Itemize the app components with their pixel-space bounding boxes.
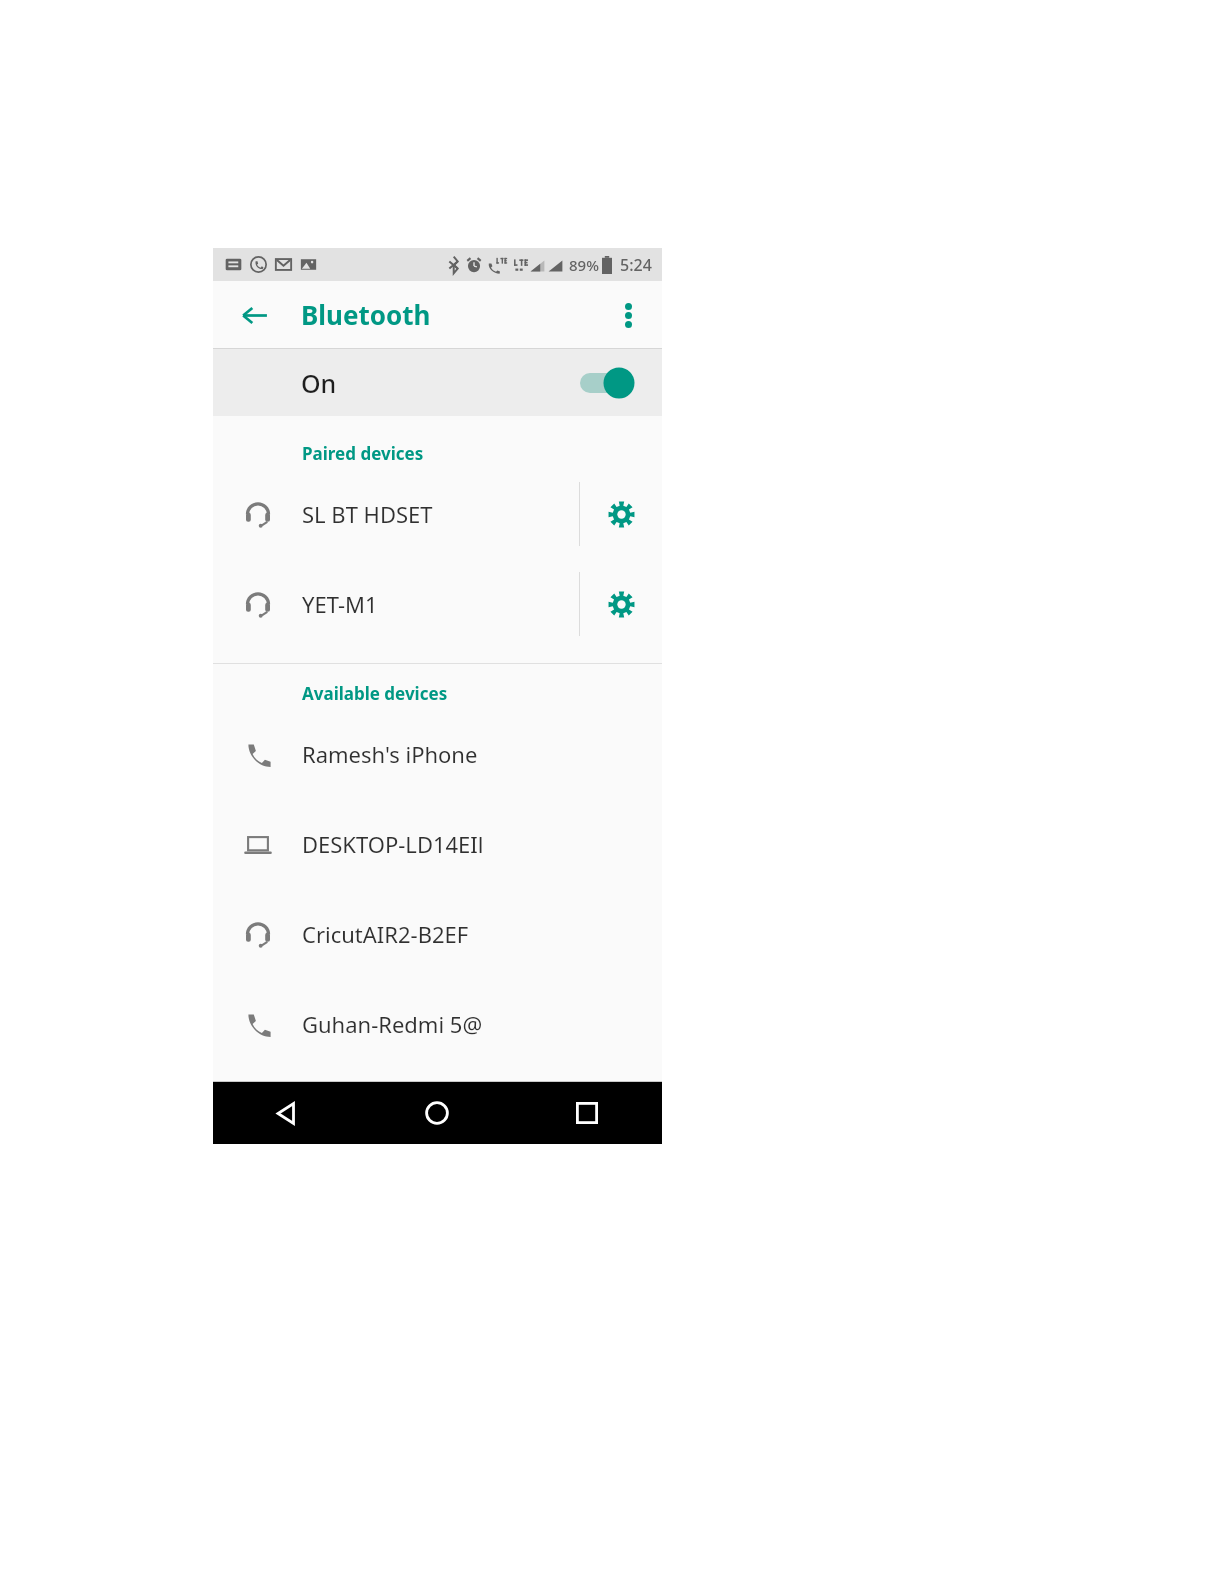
staticText: Guhan-Redmi 5@ bbox=[302, 1009, 642, 1039]
staticText: 89% bbox=[569, 255, 599, 275]
staticText: YET-M1 bbox=[302, 589, 579, 619]
button[interactable]: Guhan-Redmi 5@ bbox=[213, 979, 662, 1069]
button[interactable]: Home bbox=[362, 1082, 512, 1144]
staticText: CricutAIR2-B2EF bbox=[302, 919, 642, 949]
button[interactable]: CricutAIR2-B2EF bbox=[213, 889, 662, 979]
button[interactable]: Recent apps bbox=[512, 1082, 662, 1144]
button[interactable]: More options bbox=[606, 293, 650, 337]
staticText: SL BT HDSET bbox=[302, 499, 579, 529]
staticText: Ramesh's iPhone bbox=[302, 739, 642, 769]
button[interactable]: DESKTOP-LD14EIl bbox=[213, 799, 662, 889]
button[interactable]: Navigate up bbox=[231, 292, 277, 338]
staticText: Bluetooth bbox=[301, 297, 431, 332]
staticText: Paired devices bbox=[302, 442, 424, 465]
button[interactable]: Back bbox=[213, 1082, 362, 1144]
button[interactable]: Device settings bbox=[580, 469, 662, 559]
staticText: On bbox=[301, 366, 337, 400]
button[interactable]: Device settings bbox=[580, 559, 662, 649]
button[interactable]: YET-M1 bbox=[213, 559, 662, 649]
button[interactable]: SL BT HDSET bbox=[213, 469, 662, 559]
button[interactable]: Ramesh's iPhone bbox=[213, 709, 662, 799]
staticText: 5:24 bbox=[620, 254, 652, 276]
staticText: Available devices bbox=[302, 682, 448, 705]
staticText: DESKTOP-LD14EIl bbox=[302, 829, 642, 859]
button[interactable]: On bbox=[213, 349, 662, 416]
